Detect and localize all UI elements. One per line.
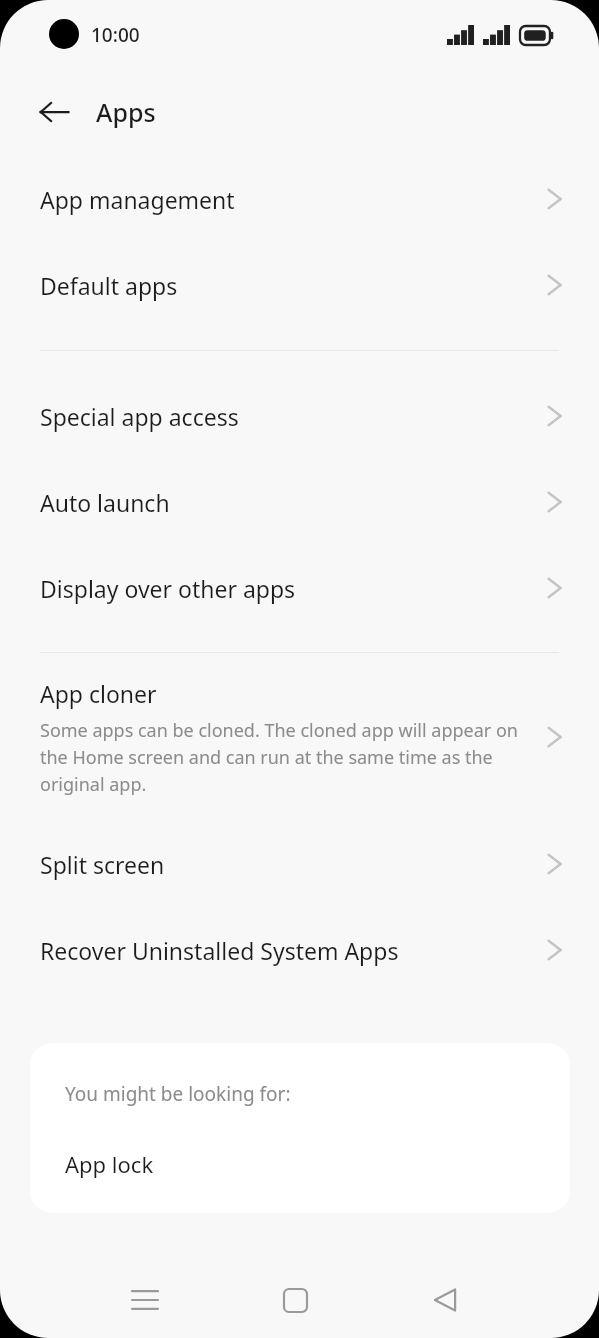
staticText: You might be looking for:	[65, 1081, 291, 1107]
button[interactable]: Auto launch	[0, 459, 599, 545]
staticText: App management	[40, 184, 545, 215]
button[interactable]: App management	[0, 156, 599, 242]
staticText: Default apps	[40, 270, 545, 301]
button[interactable]: Home	[255, 1267, 335, 1333]
staticText: Some apps can be cloned. The cloned app …	[40, 718, 531, 796]
button[interactable]: App cloner	[0, 653, 599, 821]
staticText: Apps	[96, 95, 156, 129]
button[interactable]: Display over other apps	[0, 545, 599, 631]
staticText: App cloner	[40, 678, 157, 709]
button[interactable]: Special app access	[0, 373, 599, 459]
button[interactable]: App lock	[30, 1133, 570, 1195]
button[interactable]: Split screen	[0, 821, 599, 907]
button[interactable]: Recent apps	[105, 1267, 185, 1333]
staticText: Display over other apps	[40, 573, 545, 604]
button[interactable]: Recover Uninstalled System Apps	[0, 907, 599, 993]
button[interactable]: Default apps	[0, 242, 599, 328]
staticText: App lock	[65, 1149, 154, 1179]
staticText: Split screen	[40, 849, 545, 880]
button[interactable]: Back	[405, 1267, 485, 1333]
button[interactable]: Back	[26, 84, 82, 140]
staticText: Auto launch	[40, 487, 545, 518]
staticText: Special app access	[40, 401, 545, 432]
staticText: Recover Uninstalled System Apps	[40, 935, 545, 966]
staticText: 10:00	[91, 22, 140, 48]
